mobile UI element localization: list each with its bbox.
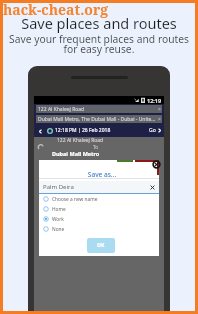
staticText: Home	[52, 206, 66, 213]
button[interactable]: Call	[37, 143, 46, 152]
staticText: Work	[52, 216, 64, 223]
staticText: 12:18 PM | 26 Feb 2018	[55, 127, 111, 134]
staticText: Save as...	[42, 170, 162, 179]
staticText: Choose a new name	[52, 196, 98, 203]
button[interactable]: 122 Al Khaleej Road	[36, 105, 162, 113]
button[interactable]: Go	[149, 127, 162, 134]
button[interactable]: Dubai Mall Metro, The Dubai Mall - Dubai…	[36, 115, 162, 123]
staticText: Go	[149, 127, 156, 134]
staticText: Palm Deira	[43, 183, 74, 191]
staticText: To	[93, 144, 98, 150]
staticText: Save places and routes	[0, 13, 198, 33]
staticText: Dubai Mall Metro, The Dubai Mall - Dubai…	[38, 116, 156, 123]
button[interactable]: Choose a new name	[43, 194, 159, 204]
button[interactable]: Work	[43, 214, 159, 224]
staticText: ×	[158, 116, 161, 123]
staticText: ×	[158, 106, 161, 113]
button[interactable]: Back	[36, 127, 44, 135]
staticText: 122 Al Khaleej Road	[38, 106, 85, 113]
button[interactable]: None	[43, 224, 159, 234]
staticText: Dubai Mall Metro	[52, 150, 100, 157]
staticText: 12:19	[147, 97, 162, 104]
button[interactable]: Close	[151, 159, 162, 170]
button[interactable]: Palm Deira	[43, 181, 155, 193]
staticText: 122 Al Khaleej Road	[57, 137, 104, 144]
staticText: None	[52, 226, 65, 233]
button[interactable]: Home	[43, 204, 159, 214]
other: Clear	[149, 184, 155, 190]
staticText: OK	[97, 242, 105, 249]
staticText: hack-cheat.org	[3, 0, 109, 19]
button[interactable]: OK	[87, 238, 115, 253]
staticText: Save your frequent places and routes for…	[0, 32, 198, 56]
